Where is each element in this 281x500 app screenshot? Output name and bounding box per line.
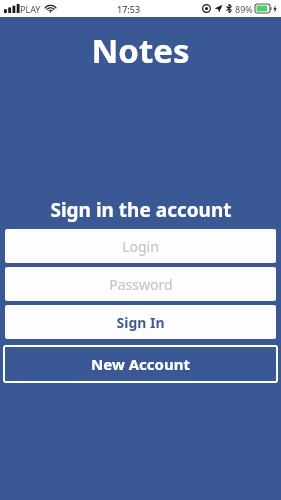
button[interactable]: Password xyxy=(5,267,276,301)
staticText: Login xyxy=(122,237,159,256)
staticText: Sign In xyxy=(116,313,165,332)
staticText: Password xyxy=(109,275,173,294)
button[interactable]: New Account xyxy=(3,345,278,383)
staticText: Notes xyxy=(91,28,190,73)
staticText: PLAY xyxy=(20,3,41,15)
staticText: New Account xyxy=(91,354,190,374)
staticText: Sign in the account xyxy=(50,197,232,223)
button[interactable]: Sign In xyxy=(5,305,276,339)
staticText: 17:53 xyxy=(117,3,141,15)
staticText: 89% xyxy=(235,3,253,15)
button[interactable]: Login xyxy=(5,229,276,263)
